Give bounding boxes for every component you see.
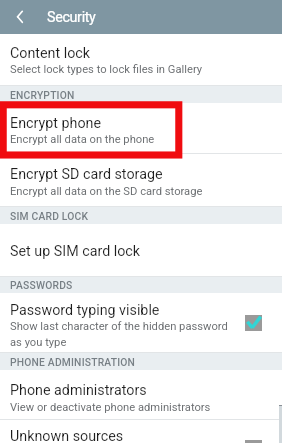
button[interactable]: Back [0, 0, 40, 34]
staticText: Phone administrators [10, 382, 147, 399]
button[interactable]: Content lock [0, 34, 282, 86]
button[interactable]: Unknown sources [0, 420, 282, 443]
staticText: Encrypt all data on the phone [10, 133, 155, 146]
staticText: Set up SIM card lock [10, 243, 141, 260]
staticText: Encrypt phone [10, 115, 102, 132]
button[interactable]: Encrypt SD card storage [0, 154, 282, 207]
staticText: Encrypt SD card storage [10, 166, 163, 183]
staticText: SIM CARD LOCK [10, 210, 89, 222]
staticText: Select lock types to lock files in Galle… [10, 63, 203, 76]
button[interactable]: Password typing visible [0, 293, 282, 353]
staticText: Security [47, 9, 96, 26]
staticText: Content lock [10, 45, 91, 62]
staticText: Encrypt all data on the SD card storage [10, 185, 203, 198]
staticText: PHONE ADMINISTRATION [10, 356, 136, 368]
staticText: Show last character of the hidden passwo… [10, 320, 238, 349]
staticText: Unknown sources [10, 428, 124, 443]
staticText: PASSWORDS [10, 279, 73, 291]
button[interactable]: Phone administrators [0, 370, 282, 420]
staticText: Password typing visible [10, 302, 160, 319]
staticText: ENCRYPTION [10, 89, 75, 101]
staticText: View or deactivate phone administrators [10, 401, 211, 414]
button[interactable]: Encrypt phone [0, 103, 282, 154]
button[interactable]: Set up SIM card lock [0, 224, 282, 277]
